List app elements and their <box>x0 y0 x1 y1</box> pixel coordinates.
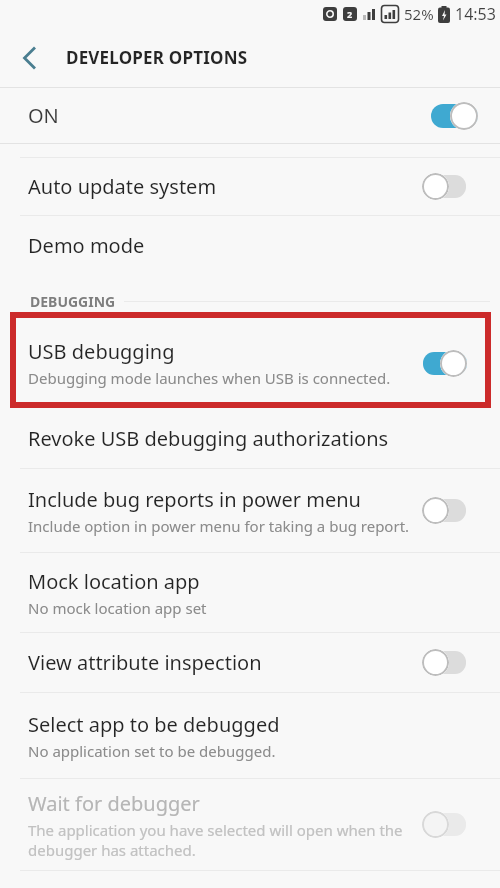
staticText: No mock location app set <box>28 598 207 618</box>
button[interactable]: Mock location app <box>0 553 500 632</box>
staticText: View attribute inspection <box>28 649 262 676</box>
staticText: 14:53 <box>455 3 496 25</box>
staticText: The application you have selected will o… <box>28 820 403 860</box>
staticText: USB debugging <box>28 338 175 365</box>
staticText: Select app to be debugged <box>28 711 280 738</box>
staticText: Include option in power menu for taking … <box>28 516 410 536</box>
button[interactable]: Demo mode <box>0 216 500 275</box>
staticText: Wait for debugger <box>28 790 200 817</box>
button[interactable]: Include bug reports in power menu <box>0 469 500 552</box>
staticText: Auto update system <box>28 173 217 200</box>
staticText: Debugging mode launches when USB is conn… <box>28 368 391 388</box>
staticText: DEBUGGING <box>30 292 116 311</box>
staticText: Include bug reports in power menu <box>28 486 361 513</box>
button[interactable]: Auto update system <box>0 158 500 215</box>
staticText: DEVELOPER OPTIONS <box>66 46 248 69</box>
button[interactable]: ON <box>0 88 500 143</box>
button[interactable]: Revoke USB debugging authorizations <box>0 408 500 468</box>
button[interactable]: Select app to be debugged <box>0 693 500 778</box>
button[interactable]: Wait for debugger <box>0 779 500 870</box>
staticText: ON <box>28 102 431 129</box>
staticText: Demo mode <box>28 232 145 259</box>
button[interactable]: USB debugging <box>10 312 491 408</box>
staticText: No application set to be debugged. <box>28 741 276 761</box>
staticText: Mock location app <box>28 568 200 595</box>
staticText: Revoke USB debugging authorizations <box>28 425 389 452</box>
staticText: 2 <box>347 8 353 20</box>
button[interactable] <box>0 30 56 86</box>
button[interactable]: View attribute inspection <box>0 633 500 692</box>
staticText: 52% <box>404 4 434 24</box>
